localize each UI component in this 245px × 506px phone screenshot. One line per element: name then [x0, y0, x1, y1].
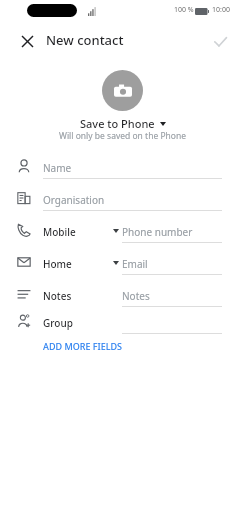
button[interactable]: Close	[14, 28, 40, 54]
staticText: 100 %	[174, 5, 194, 15]
staticText: 10:00	[212, 5, 230, 15]
button[interactable]: Group	[0, 306, 245, 338]
staticText: Phone number	[122, 225, 193, 239]
staticText: Group	[43, 316, 73, 330]
staticText: New contact	[46, 31, 124, 49]
staticText: Notes	[122, 289, 150, 303]
button[interactable]: Save to Phone	[0, 116, 245, 131]
button[interactable]: ADD MORE FIELDS	[38, 337, 128, 355]
staticText: Email	[122, 257, 148, 271]
button[interactable]: Organisation	[0, 183, 245, 215]
staticText: Notes	[43, 289, 72, 303]
staticText: Home	[43, 257, 72, 271]
button[interactable]: Notes	[0, 279, 245, 311]
staticText: Name	[43, 161, 72, 175]
staticText: Will only be saved on the Phone	[0, 130, 245, 142]
staticText: Save to Phone	[80, 116, 155, 131]
staticText: ADD MORE FIELDS	[43, 340, 123, 352]
staticText: Mobile	[43, 225, 76, 239]
button[interactable]: Save	[207, 28, 233, 54]
staticText: Organisation	[43, 193, 105, 207]
button[interactable]: Home	[0, 247, 245, 279]
button[interactable]: Mobile	[0, 215, 245, 247]
button[interactable]: Add photo	[102, 70, 143, 111]
button[interactable]: Name	[0, 151, 245, 183]
